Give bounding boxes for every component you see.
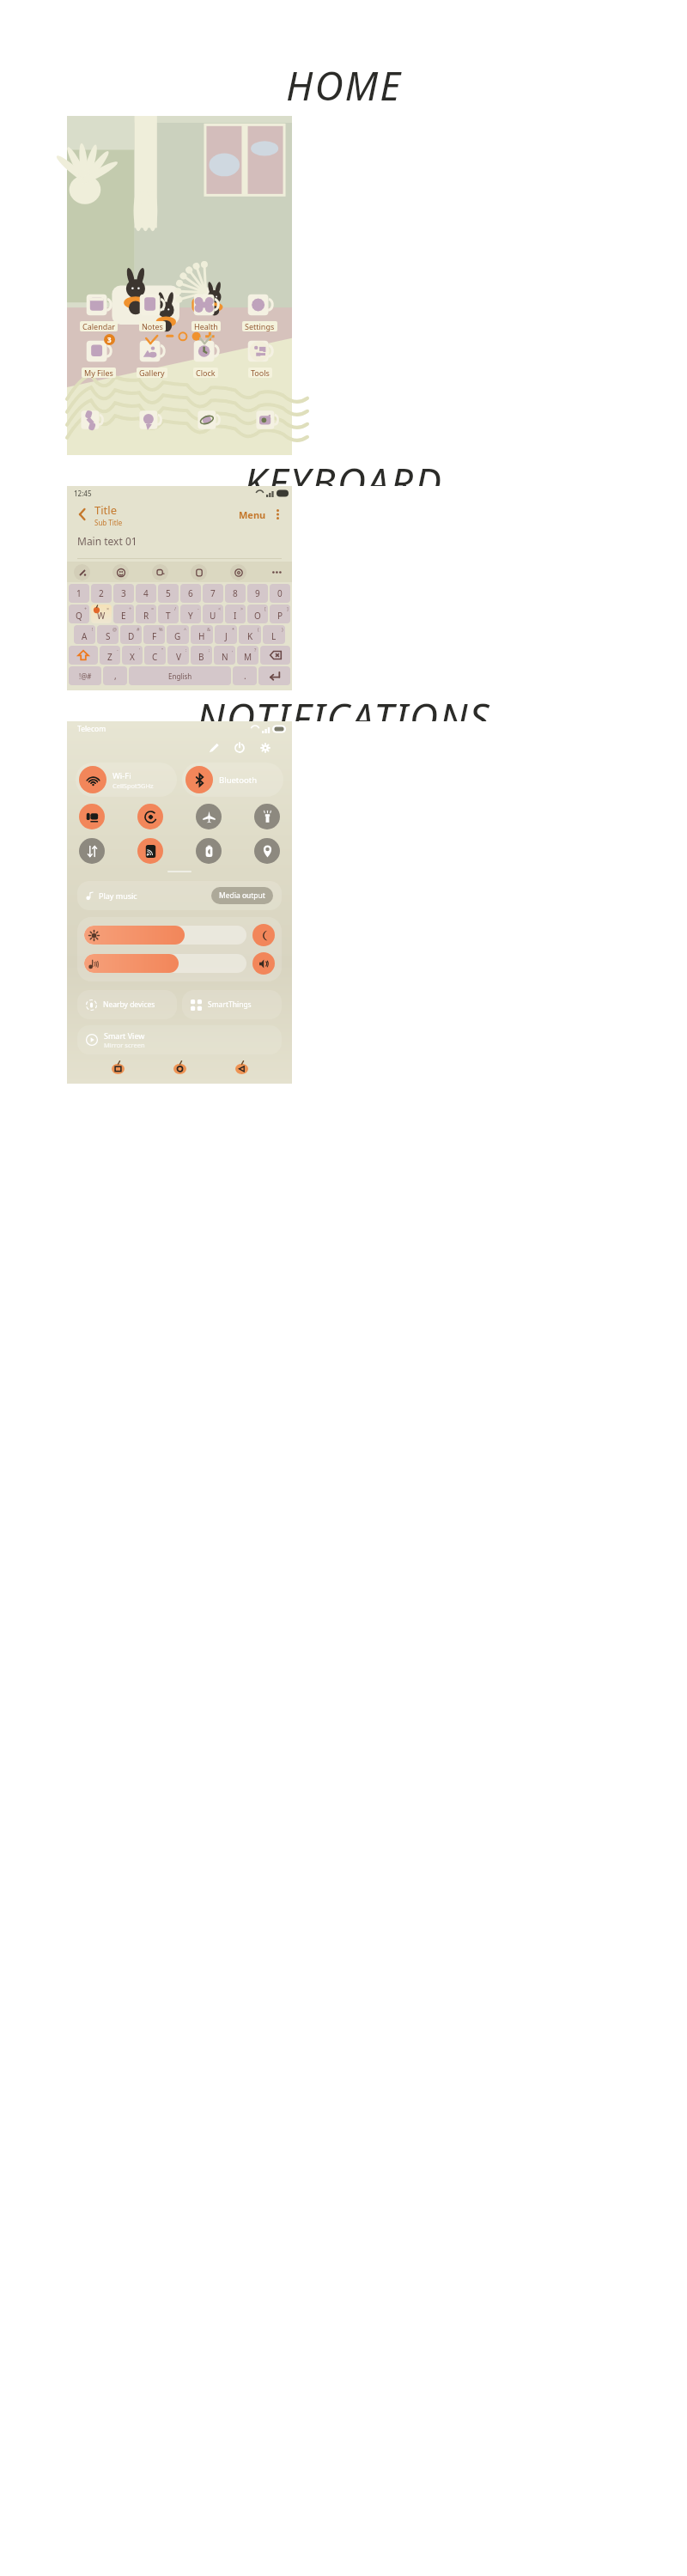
button[interactable]: 6 <box>180 584 201 603</box>
button[interactable]: Calendar <box>72 290 125 331</box>
button[interactable]: Airplane mode <box>196 804 222 829</box>
button[interactable]: Key <box>69 646 98 665</box>
button[interactable]: Power saving <box>196 838 222 864</box>
button[interactable]: Menu <box>235 508 270 521</box>
button[interactable]: # <box>120 625 142 644</box>
button[interactable]: Tools <box>233 337 287 378</box>
button[interactable]: 4 <box>136 584 156 603</box>
button[interactable]: More options <box>270 507 285 522</box>
staticText: F <box>152 630 157 642</box>
button[interactable]: Messages <box>137 407 163 433</box>
button[interactable]: Gallery <box>125 337 179 378</box>
button[interactable]: Clock <box>179 337 233 378</box>
button[interactable]: ? <box>237 646 258 665</box>
button[interactable]: 1 <box>69 584 89 603</box>
button[interactable]: ] <box>270 605 290 623</box>
button[interactable] <box>84 926 246 945</box>
button[interactable]: Wi-Fi <box>76 762 177 797</box>
button[interactable]: & <box>191 625 213 644</box>
staticText: S <box>106 630 111 642</box>
staticText: Sub Title <box>94 518 123 527</box>
button[interactable]: [ <box>247 605 268 623</box>
button[interactable]: Settings <box>256 738 275 757</box>
staticText: J <box>225 630 228 642</box>
button[interactable]: . <box>233 666 257 685</box>
staticText: 4 <box>143 587 149 599</box>
button[interactable]: * <box>215 625 237 644</box>
button[interactable]: Back <box>230 1056 252 1078</box>
button[interactable]: Media output <box>211 887 273 904</box>
button[interactable]: Health <box>179 290 233 331</box>
button[interactable]: Back <box>74 506 91 523</box>
button[interactable]: , <box>103 666 127 685</box>
button[interactable]: Tool 1 <box>112 564 129 580</box>
button[interactable]: - <box>100 646 120 665</box>
button[interactable]: Smart View <box>77 1025 282 1054</box>
button[interactable]: Key <box>258 666 290 685</box>
button[interactable]: Tool 4 <box>230 564 246 580</box>
button[interactable]: Tool 3 <box>191 564 207 580</box>
button[interactable]: > <box>225 605 246 623</box>
staticText: K <box>247 630 253 642</box>
button[interactable]: - <box>180 605 201 623</box>
button[interactable]: Nearby devices <box>77 990 177 1019</box>
button[interactable]: = <box>136 605 156 623</box>
button[interactable]: Internet <box>196 407 222 433</box>
button[interactable]: + <box>69 605 89 623</box>
button[interactable]: Notes <box>125 290 179 331</box>
button[interactable]: Camera <box>254 407 280 433</box>
button[interactable]: Tool 2 <box>152 564 168 580</box>
button[interactable]: ( <box>239 625 261 644</box>
button[interactable]: ' <box>122 646 143 665</box>
button[interactable]: Phone <box>79 407 105 433</box>
button[interactable]: Location <box>254 838 280 864</box>
button[interactable]: % <box>143 625 165 644</box>
button[interactable]: ^ <box>167 625 189 644</box>
button[interactable]: 2 <box>91 584 112 603</box>
button[interactable]: Bluetooth <box>182 762 283 797</box>
button[interactable]: More <box>269 564 285 580</box>
button[interactable]: Sound <box>252 952 275 975</box>
button[interactable]: English <box>129 666 231 685</box>
button[interactable]: Play music <box>77 881 282 910</box>
staticText: I <box>234 610 237 622</box>
button[interactable]: 7 <box>203 584 223 603</box>
button[interactable]: ; <box>191 646 212 665</box>
button[interactable]: 9 <box>247 584 268 603</box>
button[interactable]: ÷ <box>113 605 134 623</box>
button[interactable]: SmartThings <box>182 990 282 1019</box>
button[interactable]: Home <box>168 1056 191 1078</box>
button[interactable]: < <box>203 605 223 623</box>
button[interactable]: Edit <box>204 738 223 757</box>
button[interactable]: Power <box>230 738 249 757</box>
button[interactable]: ! <box>74 625 95 644</box>
staticText: : <box>185 647 187 653</box>
button[interactable]: 8 <box>225 584 246 603</box>
staticText: - <box>117 647 119 653</box>
button[interactable]: !@# <box>69 666 101 685</box>
button[interactable] <box>84 954 246 973</box>
button[interactable]: / <box>158 605 179 623</box>
button[interactable]: Settings <box>233 290 287 331</box>
button[interactable]: Dark mode <box>252 924 275 946</box>
button[interactable]: ) <box>263 625 285 644</box>
staticText: @ <box>112 626 117 632</box>
button[interactable]: Mobile data <box>79 804 105 829</box>
button[interactable]: " <box>144 646 166 665</box>
button[interactable]: NFC <box>137 838 163 864</box>
button[interactable]: : <box>167 646 189 665</box>
button[interactable]: × <box>91 605 112 623</box>
button[interactable]: 5 <box>158 584 179 603</box>
staticText: Z <box>107 651 112 663</box>
button[interactable]: Data usage <box>79 838 105 864</box>
button[interactable]: Recents <box>106 1056 129 1078</box>
button[interactable]: Auto rotate <box>137 804 163 829</box>
button[interactable]: 0 <box>270 584 290 603</box>
button[interactable]: Flashlight <box>254 804 280 829</box>
button[interactable]: @ <box>97 625 119 644</box>
button[interactable]: 3 <box>72 337 125 378</box>
button[interactable]: , <box>214 646 235 665</box>
button[interactable]: Key <box>260 646 290 665</box>
button[interactable]: Tool 0 <box>74 564 90 580</box>
button[interactable]: 3 <box>113 584 134 603</box>
